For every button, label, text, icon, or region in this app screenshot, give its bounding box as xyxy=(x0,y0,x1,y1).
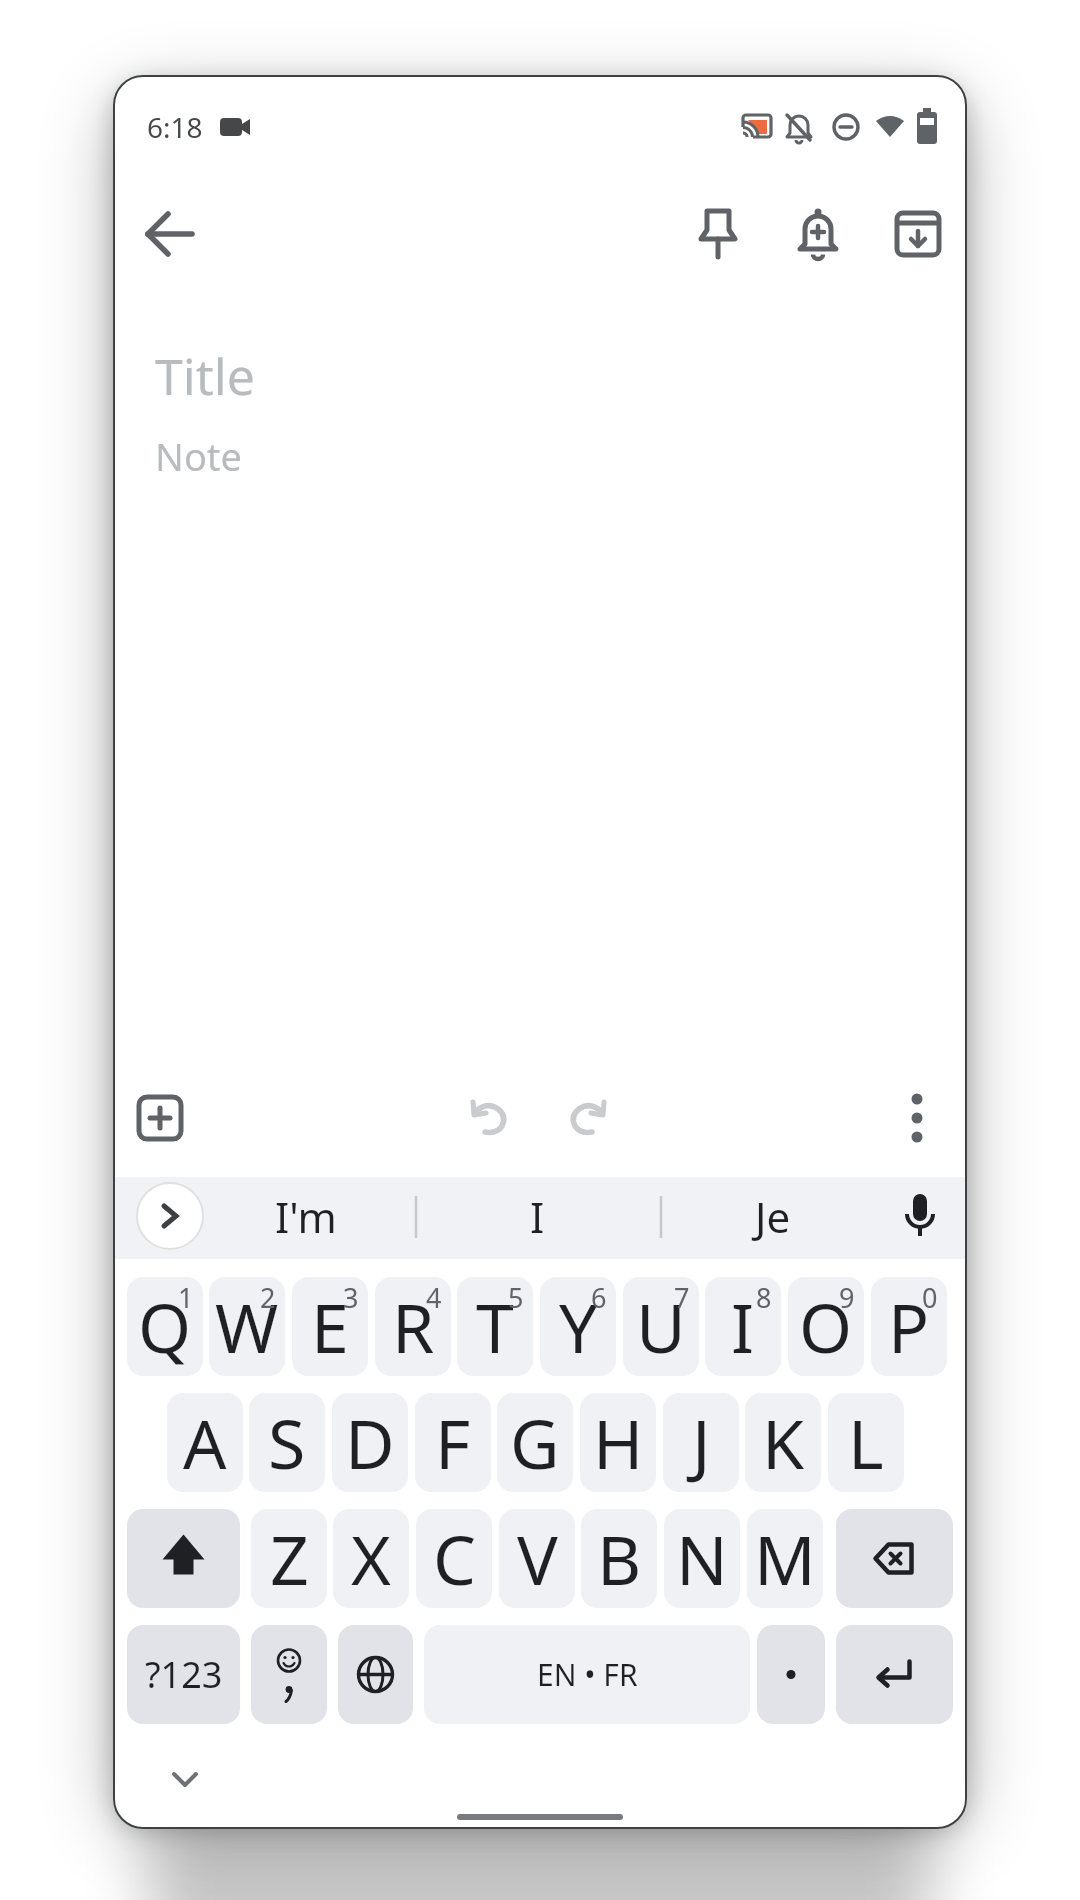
button[interactable] xyxy=(338,1625,413,1724)
staticText: W xyxy=(215,1280,279,1373)
button[interactable]: EN • FR xyxy=(424,1625,750,1724)
button[interactable]: R xyxy=(375,1277,451,1376)
staticText: 3 xyxy=(343,1279,359,1316)
button[interactable]: T xyxy=(457,1277,533,1376)
button[interactable]: W xyxy=(209,1277,285,1376)
staticText: U xyxy=(636,1280,686,1373)
button[interactable]: N xyxy=(664,1509,740,1608)
button[interactable]: A xyxy=(167,1393,243,1492)
staticText: L xyxy=(848,1396,884,1489)
button[interactable]: S xyxy=(249,1393,325,1492)
staticText: K xyxy=(762,1396,805,1489)
button[interactable]: Q xyxy=(127,1277,203,1376)
staticText: I xyxy=(731,1280,755,1373)
button[interactable] xyxy=(686,202,750,266)
staticText: F xyxy=(435,1396,471,1489)
button[interactable] xyxy=(885,1086,949,1150)
staticText: V xyxy=(517,1512,558,1605)
staticText: P xyxy=(888,1280,930,1373)
staticText: 4 xyxy=(426,1279,442,1316)
button[interactable]: I xyxy=(705,1277,781,1376)
staticText: M xyxy=(754,1512,816,1605)
staticText: G xyxy=(510,1396,560,1489)
staticText: A xyxy=(183,1396,227,1489)
button[interactable] xyxy=(556,1086,620,1150)
button[interactable] xyxy=(136,1182,204,1250)
button[interactable] xyxy=(138,202,202,266)
button[interactable]: E xyxy=(292,1277,368,1376)
staticText: I'm xyxy=(275,1188,337,1245)
button[interactable]: B xyxy=(581,1509,657,1608)
button[interactable]: L xyxy=(828,1393,904,1492)
button[interactable]: Z xyxy=(251,1509,327,1608)
button[interactable] xyxy=(457,1086,521,1150)
staticText: 9 xyxy=(839,1279,855,1316)
staticText: Title xyxy=(155,342,255,402)
staticText: T xyxy=(476,1280,514,1373)
button[interactable]: V xyxy=(499,1509,575,1608)
staticText: 5 xyxy=(508,1279,524,1316)
staticText: I xyxy=(530,1188,545,1245)
button[interactable] xyxy=(886,202,950,266)
staticText: Q xyxy=(138,1280,192,1373)
button[interactable] xyxy=(836,1625,953,1724)
button[interactable] xyxy=(786,202,850,266)
button[interactable] xyxy=(757,1625,825,1724)
button[interactable]: Y xyxy=(540,1277,616,1376)
staticText: EN • FR xyxy=(537,1654,638,1695)
staticText: ?123 xyxy=(145,1650,223,1699)
button[interactable]: F xyxy=(415,1393,491,1492)
staticText: Note xyxy=(155,430,243,482)
button[interactable]: H xyxy=(580,1393,656,1492)
staticText: 1 xyxy=(178,1279,194,1316)
button[interactable]: M xyxy=(747,1509,823,1608)
staticText: 7 xyxy=(674,1279,690,1316)
staticText: O xyxy=(799,1280,853,1373)
staticText: Je xyxy=(755,1188,791,1245)
button[interactable]: I xyxy=(477,1186,597,1246)
staticText: B xyxy=(597,1512,642,1605)
staticText: J xyxy=(692,1396,711,1489)
button[interactable]: ?123 xyxy=(127,1625,240,1724)
staticText: 6:18 xyxy=(147,108,203,146)
button[interactable]: U xyxy=(623,1277,699,1376)
staticText: D xyxy=(345,1396,395,1489)
staticText: 8 xyxy=(756,1279,772,1316)
staticText: E xyxy=(311,1280,349,1373)
staticText: Z xyxy=(270,1512,309,1605)
button[interactable]: D xyxy=(332,1393,408,1492)
button[interactable] xyxy=(153,1747,217,1811)
button[interactable] xyxy=(888,1184,952,1248)
staticText: 6 xyxy=(591,1279,607,1316)
button[interactable]: I'm xyxy=(246,1186,366,1246)
staticText: H xyxy=(593,1396,644,1489)
staticText: R xyxy=(392,1280,435,1373)
staticText: S xyxy=(268,1396,306,1489)
staticText: 2 xyxy=(260,1279,276,1316)
button[interactable]: Je xyxy=(713,1186,833,1246)
staticText: 0 xyxy=(922,1279,938,1316)
button[interactable]: C xyxy=(416,1509,492,1608)
button[interactable] xyxy=(128,1086,192,1150)
button[interactable] xyxy=(836,1509,953,1608)
button[interactable]: J xyxy=(663,1393,739,1492)
button[interactable]: G xyxy=(497,1393,573,1492)
button[interactable]: P xyxy=(871,1277,947,1376)
staticText: Y xyxy=(559,1280,598,1373)
button[interactable]: O xyxy=(788,1277,864,1376)
button[interactable]: X xyxy=(333,1509,409,1608)
button[interactable] xyxy=(127,1509,240,1608)
button[interactable]: K xyxy=(745,1393,821,1492)
staticText: C xyxy=(433,1512,476,1605)
button[interactable] xyxy=(251,1625,327,1724)
staticText: X xyxy=(351,1512,391,1605)
staticText: N xyxy=(676,1512,728,1605)
